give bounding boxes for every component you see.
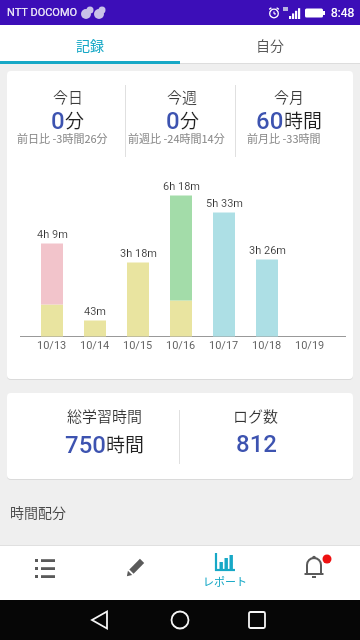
button[interactable]: 記録	[0, 25, 180, 64]
staticText: 今月	[274, 86, 305, 108]
staticText: 今日	[53, 86, 84, 108]
button[interactable]	[0, 546, 90, 600]
staticText: 43m	[84, 305, 107, 318]
button[interactable]	[270, 546, 360, 600]
staticText: 10/17	[209, 339, 239, 352]
button[interactable]	[90, 546, 180, 600]
staticText: 10/14	[80, 339, 110, 352]
staticText: 自分	[256, 35, 284, 55]
staticText: 10/19	[295, 339, 325, 352]
staticText: 10/15	[123, 339, 153, 352]
staticText: 時間	[106, 430, 145, 458]
button[interactable]: 今日	[9, 71, 127, 159]
button[interactable]: レポート	[180, 546, 270, 600]
staticText: 分	[180, 106, 200, 134]
staticText: 10/13	[37, 339, 67, 352]
staticText: 10/16	[166, 339, 196, 352]
button[interactable]: ログ数	[181, 393, 331, 479]
staticText: 8:48	[331, 6, 355, 20]
staticText: 記録	[76, 35, 104, 55]
button[interactable]	[0, 600, 120, 640]
staticText: 今週	[167, 86, 198, 108]
staticText: 分	[65, 106, 85, 134]
staticText: レポート	[203, 573, 247, 589]
button[interactable]	[120, 600, 240, 640]
staticText: 60	[256, 107, 284, 135]
staticText: 812	[236, 430, 277, 458]
button[interactable]: 総学習時間	[30, 393, 180, 479]
staticText: 6h 18m	[163, 180, 200, 193]
staticText: 前日比 -3時間26分	[17, 130, 108, 146]
staticText: 3h 18m	[120, 247, 157, 260]
staticText: 時間	[284, 106, 323, 134]
staticText: 750	[65, 431, 106, 459]
staticText: 前月比 -33時間	[247, 130, 321, 146]
button[interactable]: 自分	[180, 25, 360, 64]
staticText: 0	[166, 107, 180, 135]
staticText: 5h 33m	[206, 197, 243, 210]
staticText: 10/18	[252, 339, 282, 352]
button[interactable]: 今月	[231, 71, 348, 159]
button[interactable]: 今週	[128, 71, 237, 159]
staticText: 時間配分	[10, 502, 66, 522]
staticText: 4h 9m	[37, 228, 68, 241]
staticText: 前週比 -24時間14分	[128, 130, 225, 146]
button[interactable]	[240, 600, 360, 640]
staticText: 0	[51, 107, 65, 135]
staticText: NTT DOCOMO	[7, 6, 78, 19]
staticText: 3h 26m	[249, 244, 286, 257]
staticText: 総学習時間	[67, 405, 143, 427]
staticText: ログ数	[233, 405, 279, 427]
